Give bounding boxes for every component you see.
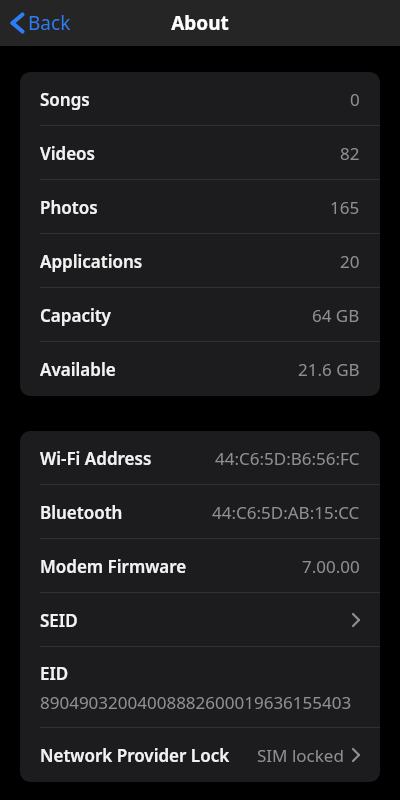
button[interactable]: Photos — [20, 180, 380, 234]
staticText: 165 — [330, 196, 360, 219]
button[interactable]: SEID — [20, 593, 380, 647]
staticText: Bluetooth — [40, 501, 123, 524]
button[interactable]: Applications — [20, 234, 380, 288]
staticText: 20 — [340, 250, 360, 273]
staticText: 64 GB — [312, 304, 360, 327]
staticText: Wi-Fi Address — [40, 447, 152, 470]
staticText: Capacity — [40, 304, 111, 327]
staticText: About — [171, 10, 229, 36]
staticText: 21.6 GB — [298, 358, 360, 381]
button[interactable]: Wi-Fi Address — [20, 431, 380, 485]
button[interactable]: Available — [20, 342, 380, 396]
staticText: 44:C6:5D:B6:56:FC — [215, 447, 360, 470]
button[interactable]: Back — [0, 0, 79, 46]
staticText: Videos — [40, 142, 95, 165]
staticText: SIM locked — [257, 744, 344, 767]
staticText: 89049032004008882600019636155403 — [40, 691, 352, 714]
staticText: EID — [40, 662, 69, 685]
button[interactable]: Network Provider Lock — [20, 728, 380, 782]
button[interactable]: Bluetooth — [20, 485, 380, 539]
staticText: 7.00.00 — [302, 555, 360, 578]
button[interactable]: Videos — [20, 126, 380, 180]
staticText: Modem Firmware — [40, 555, 187, 578]
button[interactable]: EID — [20, 647, 380, 728]
staticText: 0 — [350, 88, 360, 111]
staticText: 82 — [340, 142, 360, 165]
staticText: Network Provider Lock — [40, 744, 230, 767]
staticText: Back — [28, 10, 71, 36]
staticText: Songs — [40, 88, 90, 111]
staticText: Photos — [40, 196, 98, 219]
staticText: SEID — [40, 609, 78, 632]
button[interactable]: Songs — [20, 72, 380, 126]
button[interactable]: Modem Firmware — [20, 539, 380, 593]
button[interactable]: Capacity — [20, 288, 380, 342]
staticText: Available — [40, 358, 116, 381]
staticText: Applications — [40, 250, 143, 273]
staticText: 44:C6:5D:AB:15:CC — [212, 501, 360, 524]
